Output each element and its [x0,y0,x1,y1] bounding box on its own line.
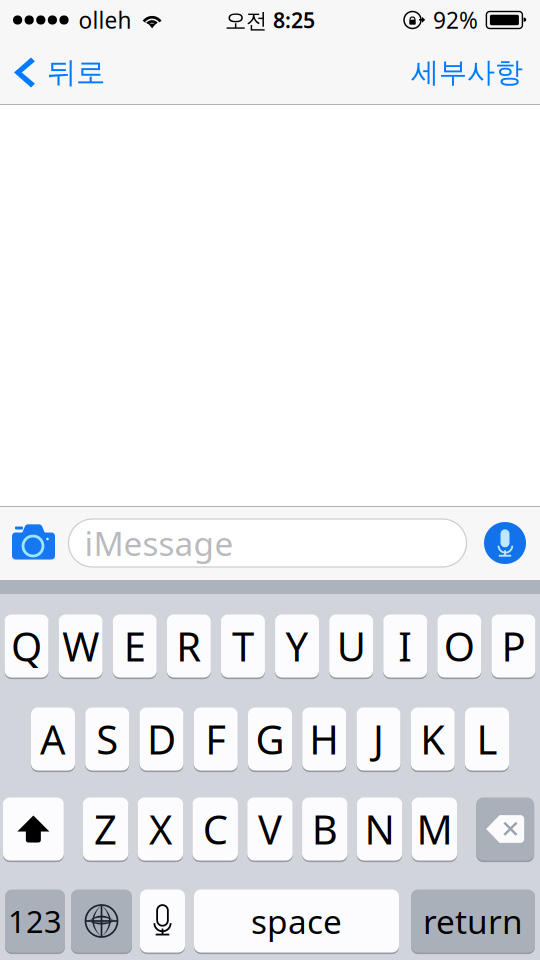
staticText: K [420,712,445,765]
button[interactable]: I [383,614,427,677]
button[interactable]: 세부사항 [399,40,540,104]
button[interactable]: iMessage [65,519,463,567]
staticText: I [398,619,412,672]
staticText: T [232,619,254,672]
staticText: X [149,802,172,855]
button[interactable]: Q [5,614,49,677]
staticText: olleh [79,5,132,35]
button[interactable]: X [138,797,183,860]
staticText: N [365,802,395,855]
staticText: 123 [8,901,62,941]
button[interactable]: 뒤로 [0,40,117,104]
staticText: Z [94,802,117,855]
staticText: return [423,899,523,943]
staticText: space [251,899,342,943]
button[interactable]: Switch keyboard [71,889,132,952]
button[interactable]: J [356,707,400,770]
button[interactable]: N [357,797,402,860]
staticText: L [476,712,497,765]
button[interactable]: U [329,614,373,677]
staticText: Q [11,619,42,672]
button[interactable]: G [248,707,292,770]
staticText: O [444,619,475,672]
staticText: R [176,619,201,672]
button[interactable]: 123 [5,889,65,952]
staticText: E [124,619,146,672]
staticText: S [96,712,118,765]
staticText: A [40,712,66,765]
staticText: H [309,712,339,765]
button[interactable]: L [465,707,509,770]
button[interactable]: P [491,614,535,677]
staticText: B [312,802,338,855]
staticText: V [258,802,282,855]
button[interactable]: A [31,707,75,770]
staticText: C [203,802,228,855]
button[interactable]: O [437,614,481,677]
staticText: J [373,712,384,765]
button[interactable]: T [221,614,265,677]
button[interactable]: E [113,614,157,677]
staticText: 오전 8:25 [225,6,315,34]
staticText: Y [286,619,309,672]
staticText: U [337,619,366,672]
button[interactable]: S [85,707,129,770]
button[interactable]: K [411,707,455,770]
staticText: M [416,802,452,855]
button[interactable]: B [302,797,348,860]
staticText: 92% [433,5,478,35]
button[interactable]: V [247,797,293,860]
button[interactable]: R [167,614,211,677]
staticText: W [62,619,99,672]
button[interactable]: W [59,614,103,677]
button[interactable]: Z [83,797,128,860]
staticText: P [501,619,525,672]
button[interactable]: Delete [476,797,534,860]
button[interactable]: Take photo [0,506,65,580]
staticText: G [255,712,284,765]
staticText: iMessage [84,521,233,565]
staticText: 뒤로 [47,54,105,90]
button[interactable]: C [192,797,238,860]
button[interactable]: F [194,707,238,770]
button[interactable]: Y [275,614,319,677]
staticText: 세부사항 [411,55,523,90]
button[interactable]: Shift [3,797,64,860]
button[interactable]: return [411,889,535,952]
staticText: D [147,712,176,765]
button[interactable]: space [194,889,399,952]
button[interactable]: H [302,707,346,770]
button[interactable]: Dictate [471,506,540,580]
button[interactable]: D [139,707,183,770]
button[interactable]: M [412,797,457,860]
staticText: F [205,712,226,765]
button[interactable]: Dictation [140,889,185,952]
